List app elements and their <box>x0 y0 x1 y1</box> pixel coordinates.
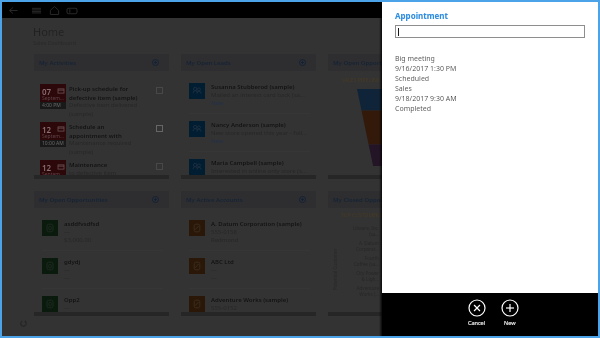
staticText: 12 <box>42 162 52 173</box>
button[interactable]: Add <box>152 196 159 203</box>
staticText: 9/18/2017 9:30 AM <box>395 94 457 104</box>
button[interactable]: My Activities <box>34 54 169 71</box>
button[interactable]: Back <box>6 3 21 18</box>
staticText: My Closed Opportunities <box>333 196 406 204</box>
staticText: Pick-up schedule for defective item (sam… <box>69 85 138 101</box>
staticText: 12 <box>42 124 52 135</box>
button[interactable]: Big meeting <box>395 54 585 84</box>
staticText: 9/16/2017 1:30 PM <box>395 64 457 74</box>
button[interactable]: My Active Accounts <box>181 191 316 208</box>
button[interactable]: Sales <box>395 84 585 114</box>
button[interactable]: Cancel <box>468 293 486 326</box>
button[interactable]: Maria Campbell (sample) <box>181 159 316 175</box>
staticText: My Active Accounts <box>186 196 243 204</box>
staticText: ABC Ltd <box>211 258 234 266</box>
staticText: 555-0152 <box>211 304 237 312</box>
button[interactable]: asddfvsdfsd <box>34 220 169 258</box>
staticText: Maria Campbell (sample) <box>211 159 284 167</box>
button[interactable]: Menu <box>29 3 44 18</box>
staticText: New <box>504 319 516 326</box>
staticText: Schedule an appointment with <box>69 123 122 139</box>
staticText: Mailed an interest card back (sa... <box>211 91 305 99</box>
button[interactable]: Mark complete <box>156 163 163 170</box>
button[interactable]: My Open Leads <box>181 54 316 71</box>
button[interactable] <box>395 25 585 38</box>
button[interactable]: Display mode <box>64 3 79 18</box>
button[interactable]: Home <box>47 3 62 18</box>
staticText: My Open Opportunities <box>39 196 108 204</box>
button[interactable]: My Closed Opportunities <box>328 191 463 208</box>
button[interactable]: 12 <box>34 122 169 160</box>
staticText: Sales <box>395 84 412 94</box>
staticText: Opp2 <box>64 296 80 304</box>
staticText: 07 <box>42 86 52 97</box>
button[interactable]: Refresh <box>19 319 28 328</box>
button[interactable]: Adventure Works (sample) <box>181 296 316 312</box>
staticText: A. Datum Corporation (sample) <box>211 220 302 228</box>
staticText: 4:00 PM <box>42 102 61 109</box>
staticText: gdydj <box>64 258 81 266</box>
staticText: asddfvsdfsd <box>64 220 100 228</box>
button[interactable]: Susanna Stubberod (sample) <box>181 83 316 121</box>
staticText: Home <box>33 24 65 39</box>
button[interactable]: Add <box>299 59 306 66</box>
staticText: Completed <box>395 104 432 114</box>
staticText: SALES PIPELINE <box>342 77 380 84</box>
staticText: Septem... <box>42 133 64 140</box>
button[interactable]: Mark complete <box>156 87 163 94</box>
staticText: Big meeting <box>395 54 435 64</box>
button[interactable]: My Open Opportunities <box>34 191 169 208</box>
staticText: 555-0158 <box>211 228 237 236</box>
staticText: Appointment <box>395 10 448 21</box>
staticText: New store opened this year - foll... <box>211 129 307 137</box>
staticText: My Open Leads <box>186 59 231 67</box>
staticText: My Open Opportunities <box>333 59 402 67</box>
staticText: New <box>211 99 224 107</box>
button[interactable]: Add <box>299 196 306 203</box>
staticText: to defective item <box>69 169 117 175</box>
staticText: Maintenance <box>69 161 108 169</box>
button[interactable]: Add <box>152 59 159 66</box>
button[interactable]: gdydj <box>34 258 169 296</box>
button[interactable]: Opp2 <box>34 296 169 312</box>
staticText: 10:00 AM <box>42 140 64 147</box>
button[interactable]: Mark complete <box>156 125 163 132</box>
staticText: TOP CUSTOMERS <box>341 212 382 219</box>
staticText: Septem... <box>42 171 64 175</box>
staticText: Potential Customer <box>332 248 338 290</box>
button[interactable]: 12 <box>34 160 169 175</box>
button[interactable]: My Open Opportunities <box>328 54 463 71</box>
staticText: Scheduled <box>395 74 430 84</box>
button[interactable]: A. Datum Corporation (sample) <box>181 220 316 258</box>
staticText: Cancel <box>468 319 486 326</box>
button[interactable]: New <box>501 293 519 326</box>
staticText: $3,000.00 <box>64 236 92 244</box>
button[interactable]: Nancy Anderson (sample) <box>181 121 316 159</box>
staticText: Adventure Works (sample) <box>211 296 289 304</box>
button[interactable]: 07 <box>34 84 169 122</box>
staticText: Septem... <box>42 95 64 102</box>
staticText: Susanna Stubberod (sample) <box>211 83 295 91</box>
staticText: Redmond <box>211 236 239 244</box>
button[interactable]: ABC Ltd <box>181 258 316 296</box>
staticText: Nancy Anderson (sample) <box>211 121 286 129</box>
staticText: My Activities <box>39 59 77 67</box>
staticText: New <box>211 137 224 145</box>
